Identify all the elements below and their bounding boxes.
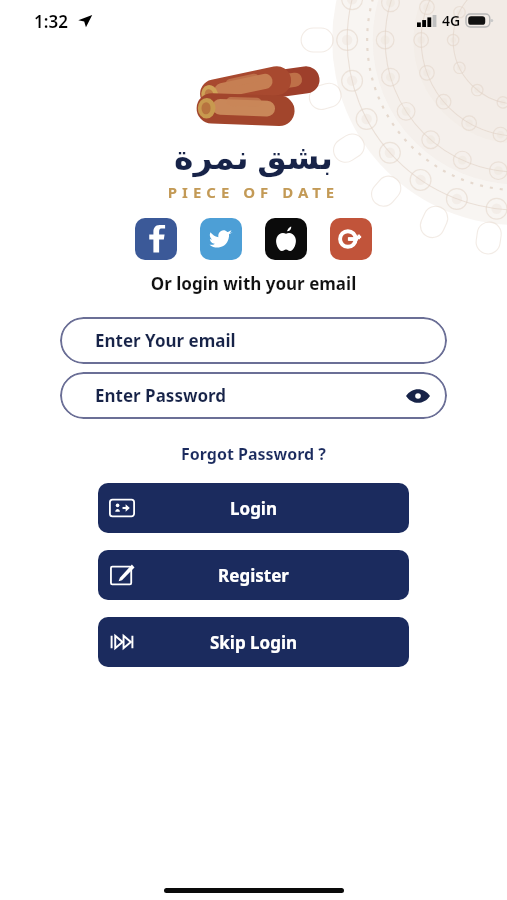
button[interactable]: Sign in with Facebook: [135, 218, 177, 260]
button[interactable]: Sign in with Google: [330, 218, 372, 260]
staticText: PIECE OF DATE: [0, 182, 507, 202]
button[interactable]: Show password: [403, 381, 433, 411]
button[interactable]: Login: [98, 483, 409, 533]
button[interactable]: Enter Your email: [60, 317, 447, 364]
staticText: Enter Your email: [95, 329, 236, 352]
button[interactable]: Skip Login: [98, 617, 409, 667]
staticText: Enter Password: [95, 384, 227, 407]
staticText: Skip Login: [98, 631, 409, 654]
button[interactable]: Sign in with Twitter: [200, 218, 242, 260]
staticText: Register: [98, 564, 409, 587]
button[interactable]: Register: [98, 550, 409, 600]
button[interactable]: Enter Password: [60, 372, 447, 419]
button[interactable]: Forgot Password ?: [0, 439, 507, 469]
staticText: Login: [98, 497, 409, 520]
staticText: 4G: [442, 11, 461, 30]
staticText: Or login with your email: [0, 272, 507, 295]
button[interactable]: Sign in with Apple: [265, 218, 307, 260]
staticText: 1:32: [34, 10, 68, 33]
staticText: بشق نمرة: [0, 134, 507, 179]
